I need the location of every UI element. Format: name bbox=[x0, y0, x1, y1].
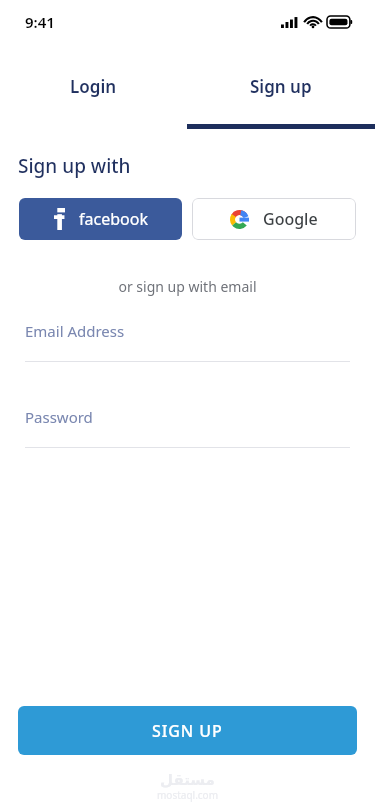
staticText: Login bbox=[70, 75, 117, 98]
button[interactable]: facebook bbox=[19, 198, 182, 240]
staticText: Sign up with bbox=[18, 153, 131, 179]
staticText: SIGN UP bbox=[152, 720, 223, 742]
staticText: 9:41 bbox=[25, 12, 55, 32]
staticText: mostaql.com bbox=[157, 788, 219, 802]
button[interactable]: Email Address bbox=[25, 321, 350, 362]
button[interactable]: Sign up bbox=[187, 44, 375, 129]
staticText: Sign up bbox=[250, 75, 312, 98]
staticText: Password bbox=[25, 407, 93, 427]
staticText: Google bbox=[263, 208, 318, 230]
button[interactable]: Password bbox=[25, 407, 350, 448]
button[interactable]: SIGN UP bbox=[18, 706, 357, 755]
button[interactable]: Login bbox=[0, 44, 187, 129]
staticText: facebook bbox=[79, 208, 148, 230]
staticText: مستقل bbox=[160, 771, 215, 788]
button[interactable]: Google bbox=[192, 198, 356, 240]
staticText: Email Address bbox=[25, 321, 125, 341]
staticText: or sign up with email bbox=[0, 277, 375, 296]
